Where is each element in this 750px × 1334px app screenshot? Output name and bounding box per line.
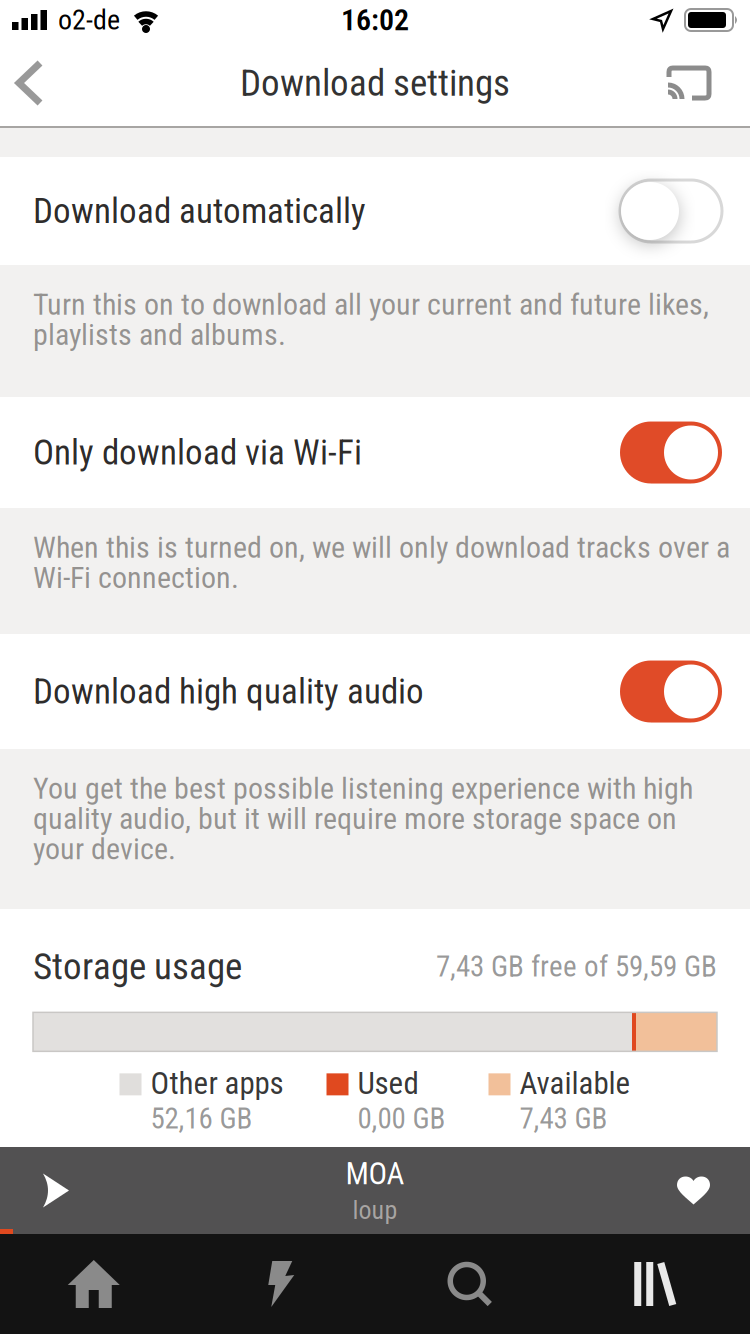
staticText: Storage usage [33,945,242,988]
staticText: Turn this on to download all your curren… [33,287,709,352]
button[interactable]: Like [677,1148,750,1232]
button[interactable]: Only download via Wi-Fi [0,397,750,508]
staticText: loup [352,1195,397,1225]
staticText: 52,16 GB [150,1102,252,1136]
staticText: Only download via Wi-Fi [33,432,362,473]
staticText: You get the best possible listening expe… [33,771,693,866]
staticText: o2-de [58,4,120,36]
staticText: Download settings [240,61,510,105]
button[interactable]: Back [0,47,44,119]
button[interactable]: Library [562,1234,750,1334]
button[interactable]: Search [375,1234,562,1334]
staticText: MOA [345,1156,404,1192]
staticText: Available [519,1065,630,1102]
staticText: 16:02 [341,2,409,38]
staticText: 7,43 GB [519,1102,607,1136]
staticText: 0,00 GB [357,1102,445,1136]
button[interactable]: Download high quality audio [0,634,750,749]
button[interactable]: Download automatically [0,157,750,265]
staticText: Download high quality audio [33,671,424,712]
button[interactable]: Stream [187,1234,375,1334]
button[interactable]: Cast [666,47,750,119]
staticText: 7,43 GB free of 59,59 GB [436,950,717,984]
button[interactable]: Home [0,1234,187,1334]
button[interactable]: Play [0,1149,69,1231]
staticText: When this is turned on, we will only dow… [33,530,730,595]
staticText: Download automatically [33,190,366,231]
staticText: Used [357,1065,418,1102]
staticText: Other apps [150,1065,283,1102]
